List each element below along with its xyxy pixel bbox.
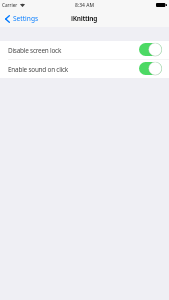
button[interactable]: Enable sound on click (0, 60, 169, 78)
button[interactable]: Toggle setting, on (139, 62, 162, 75)
staticText: Disable screen lock (8, 46, 62, 55)
staticText: 8:34 AM (75, 2, 95, 9)
staticText: Enable sound on click (8, 65, 69, 74)
button[interactable]: Disable screen lock (0, 41, 169, 59)
staticText: Settings (13, 14, 39, 23)
button[interactable]: Toggle setting, on (139, 43, 162, 56)
button[interactable]: Back to Settings (0, 12, 45, 25)
staticText: iKnitting (71, 14, 98, 23)
staticText: Carrier (2, 2, 18, 8)
